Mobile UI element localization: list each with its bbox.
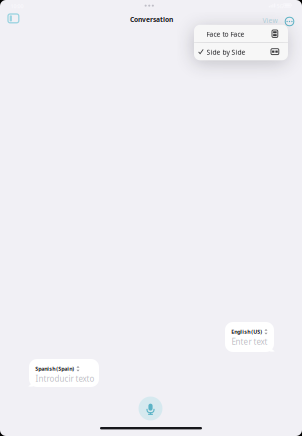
staticText: Enter text: [231, 336, 267, 347]
button[interactable]: Show Sidebar: [4, 10, 23, 27]
staticText: Side by Side: [206, 48, 245, 57]
button[interactable]: English (US): [225, 322, 274, 352]
button[interactable]: Spanish (Spain): [29, 359, 99, 387]
staticText: Spanish (Spain): [35, 365, 74, 372]
staticText: English (US): [231, 328, 262, 335]
staticText: Conversation: [130, 15, 173, 24]
button[interactable]: Face to Face: [194, 25, 288, 42]
staticText: View: [262, 16, 277, 25]
button[interactable]: Side by Side: [194, 43, 288, 60]
button[interactable]: More: [281, 13, 298, 30]
staticText: Introducir texto: [35, 373, 94, 384]
button[interactable]: View: [259, 13, 280, 28]
button[interactable]: Start Listening: [138, 396, 162, 420]
staticText: Face to Face: [206, 30, 244, 39]
